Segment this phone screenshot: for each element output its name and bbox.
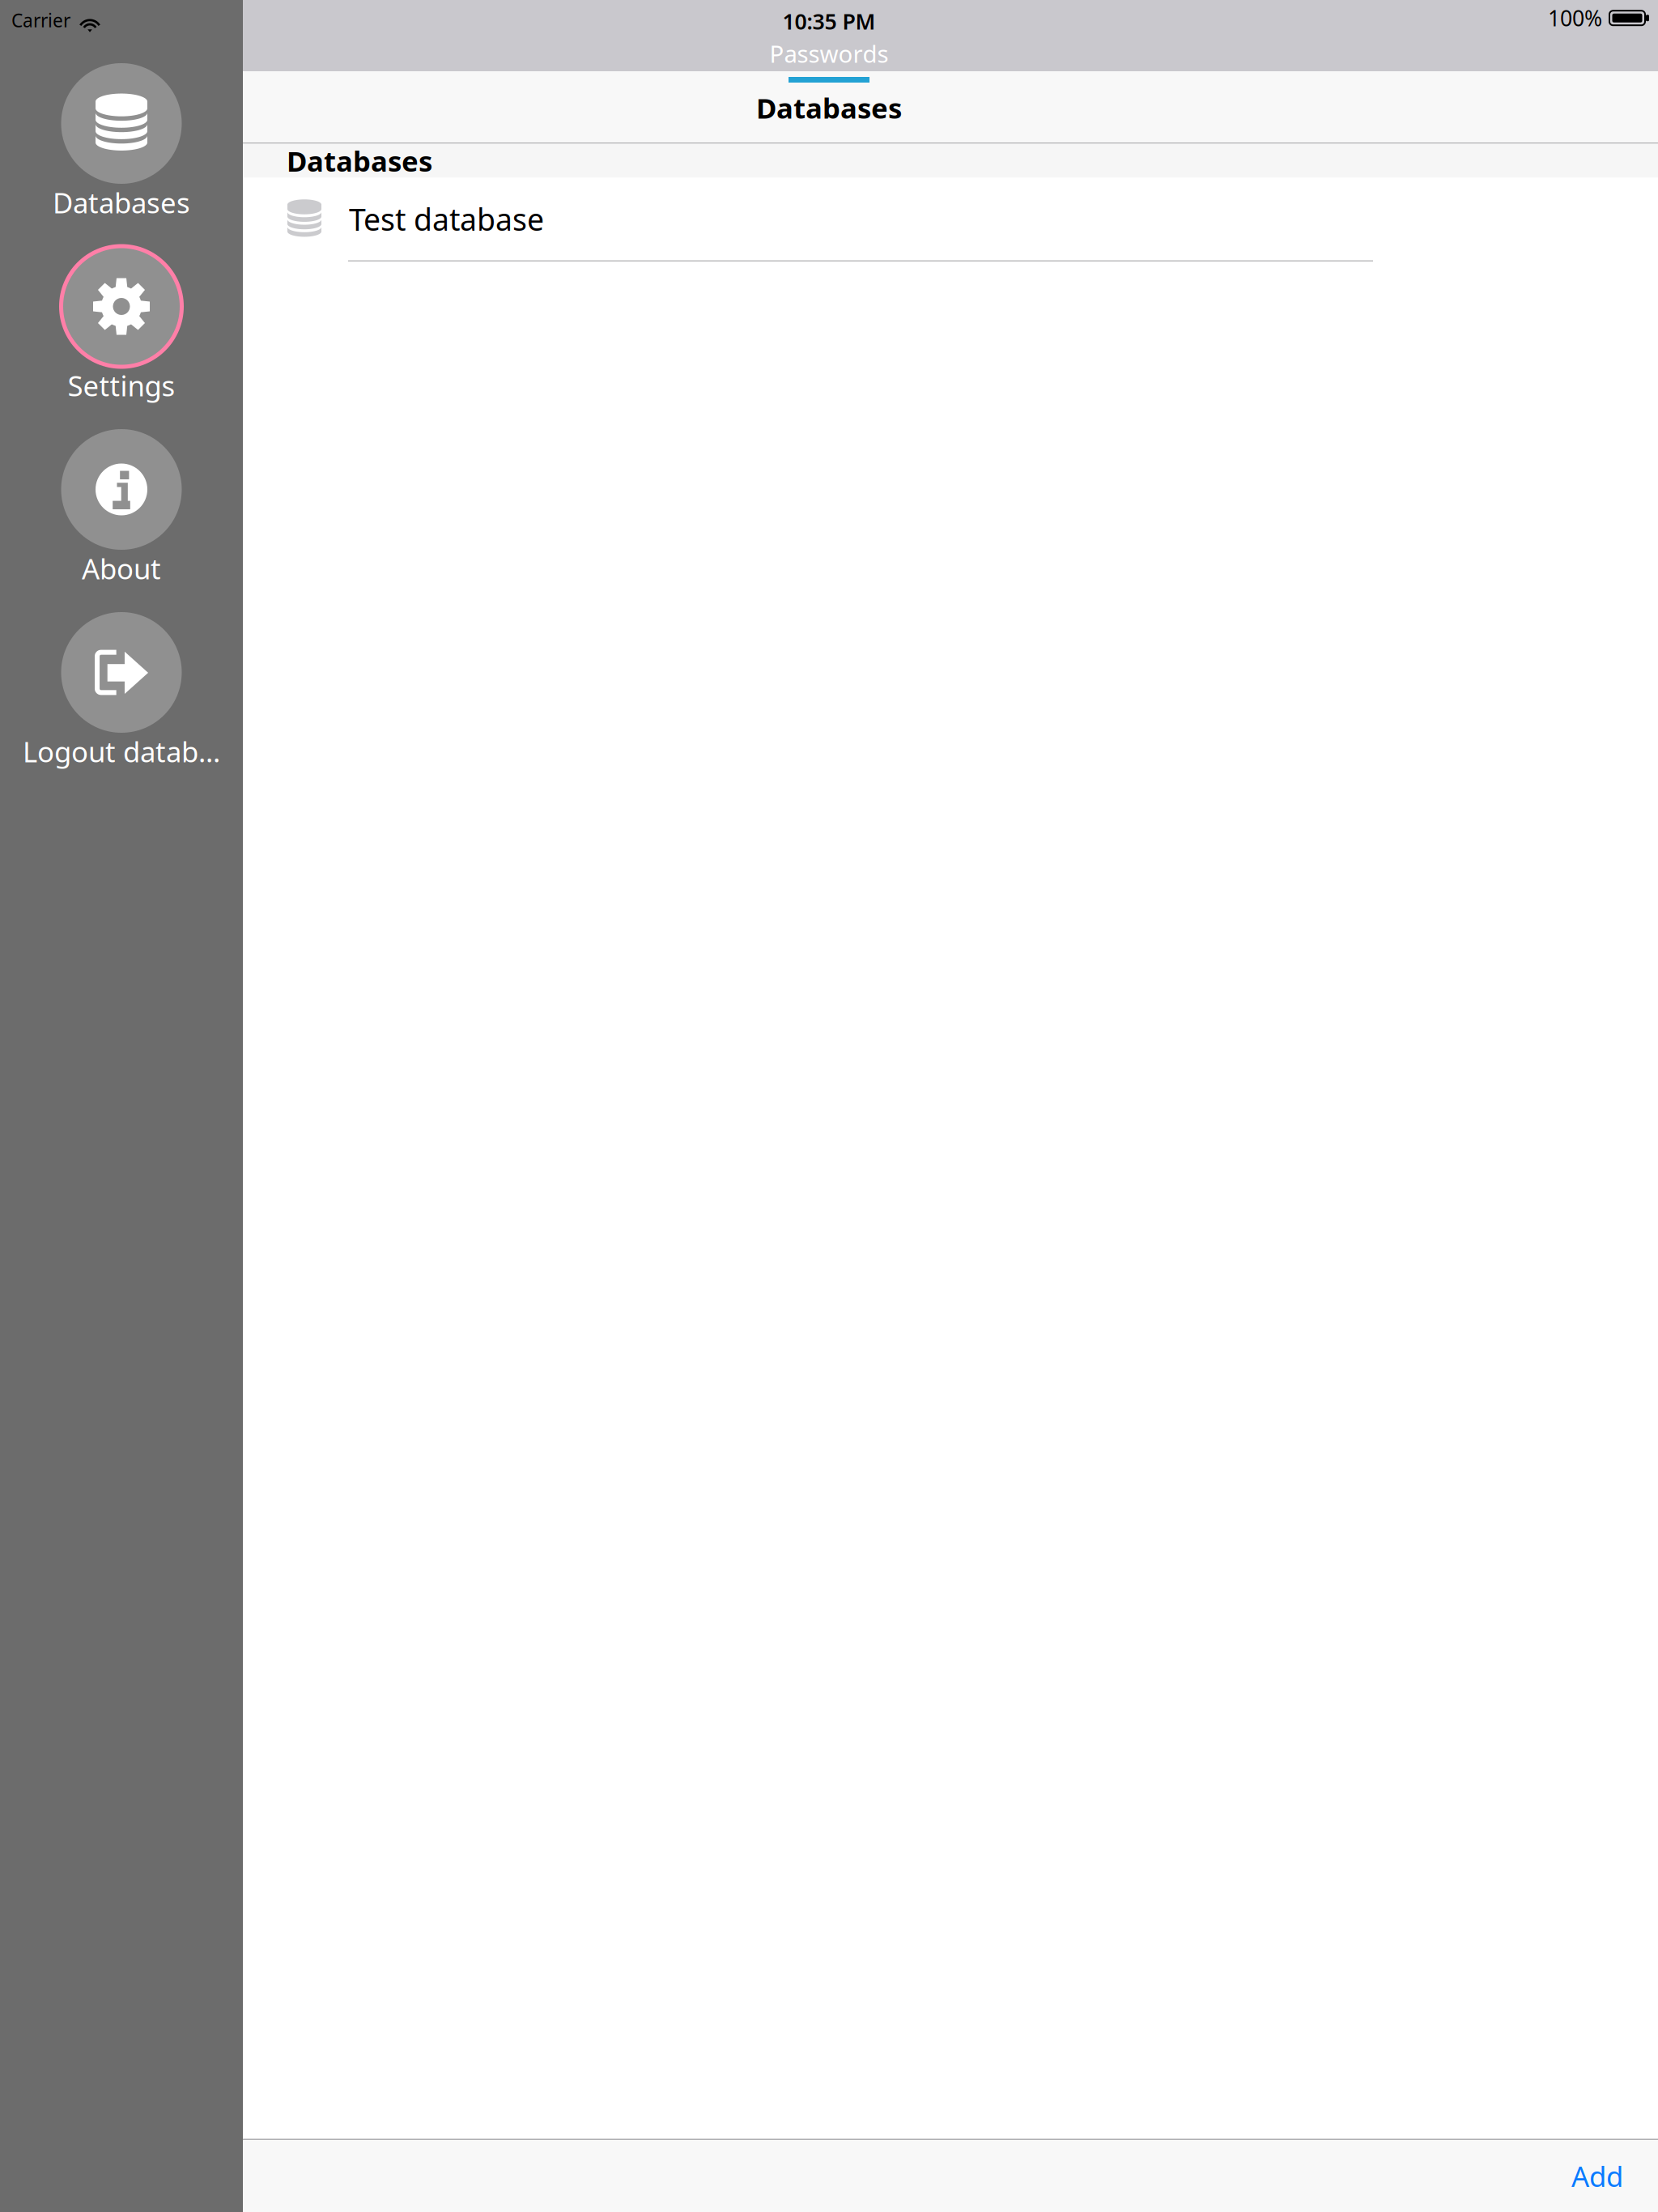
- button[interactable]: Add: [1555, 2148, 1639, 2204]
- staticText: Databases: [287, 142, 432, 179]
- button[interactable]: Passwords: [769, 38, 889, 69]
- button[interactable]: About: [0, 429, 243, 612]
- staticText: Add: [1571, 2157, 1623, 2195]
- staticText: Test database: [349, 199, 544, 239]
- staticText: About: [82, 550, 161, 587]
- staticText: 100%: [1548, 4, 1602, 32]
- staticText: Passwords: [769, 38, 889, 69]
- staticText: Databases: [53, 184, 190, 221]
- button[interactable]: Settings: [0, 246, 243, 429]
- button[interactable]: Logout datab...: [0, 612, 243, 795]
- staticText: Settings: [68, 367, 175, 404]
- staticText: Carrier: [11, 8, 70, 32]
- button[interactable]: Databases: [0, 63, 243, 246]
- staticText: 10:35 PM: [782, 7, 876, 36]
- staticText: Databases: [756, 89, 902, 126]
- staticText: Logout datab...: [23, 733, 220, 770]
- button[interactable]: Test database: [243, 178, 1658, 262]
